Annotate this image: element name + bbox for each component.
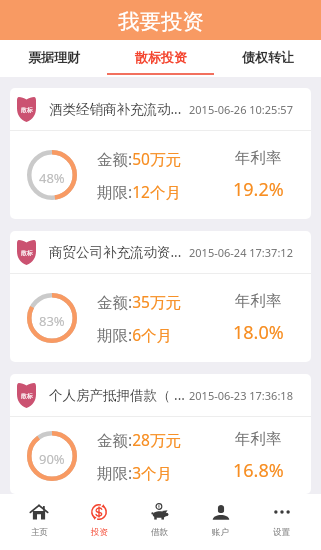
staticText: 19.2%	[233, 177, 284, 202]
staticText: 90%	[39, 450, 65, 468]
staticText: 金额:50万元	[97, 148, 181, 169]
staticText: 期限:12个月	[97, 181, 181, 202]
staticText: 散标	[21, 106, 33, 114]
staticText: 年利率	[235, 291, 282, 311]
button[interactable]: 散标	[10, 374, 311, 494]
staticText: 金额:28万元	[97, 429, 181, 450]
staticText: 18.0%	[233, 320, 284, 345]
staticText: 个人房产抵押借款（ ...	[49, 386, 185, 404]
staticText: 期限:6个月	[97, 324, 173, 345]
staticText: 散标投资	[135, 49, 187, 65]
staticText: 商贸公司补充流动资...	[49, 243, 182, 261]
staticText: 借款	[151, 527, 168, 538]
staticText: 16.8%	[233, 458, 284, 483]
button[interactable]: 散标	[10, 231, 311, 362]
staticText: 设置	[273, 527, 290, 538]
button[interactable]: Account	[190, 494, 251, 550]
staticText: 年利率	[235, 148, 282, 168]
button[interactable]: Loan	[129, 494, 190, 550]
button[interactable]: 散标投资	[107, 40, 214, 77]
button[interactable]: Settings	[251, 494, 312, 550]
button[interactable]: 散标	[10, 88, 311, 219]
staticText: 2015-06-23 17:36:18	[189, 388, 293, 403]
staticText: 年利率	[235, 429, 282, 449]
staticText: 我要投资	[118, 8, 204, 35]
staticText: 投资	[91, 527, 108, 538]
button[interactable]: 票据理财	[0, 40, 107, 77]
button[interactable]: Invest	[69, 494, 129, 550]
staticText: 48%	[39, 169, 65, 187]
staticText: 账户	[212, 527, 229, 538]
staticText: 债权转让	[242, 49, 294, 65]
staticText: 主页	[31, 527, 48, 538]
staticText: 酒类经销商补充流动...	[49, 100, 182, 118]
staticText: 期限:3个月	[97, 462, 173, 483]
staticText: 金额:35万元	[97, 291, 181, 312]
staticText: 2015-06-24 17:37:12	[189, 245, 293, 260]
button[interactable]: 债权转让	[214, 40, 321, 77]
staticText: 散标	[21, 392, 33, 400]
button[interactable]: Home	[9, 494, 69, 550]
staticText: 2015-06-26 10:25:57	[189, 102, 293, 117]
staticText: 83%	[39, 312, 65, 330]
staticText: 票据理财	[28, 49, 80, 65]
staticText: 散标	[21, 249, 33, 257]
